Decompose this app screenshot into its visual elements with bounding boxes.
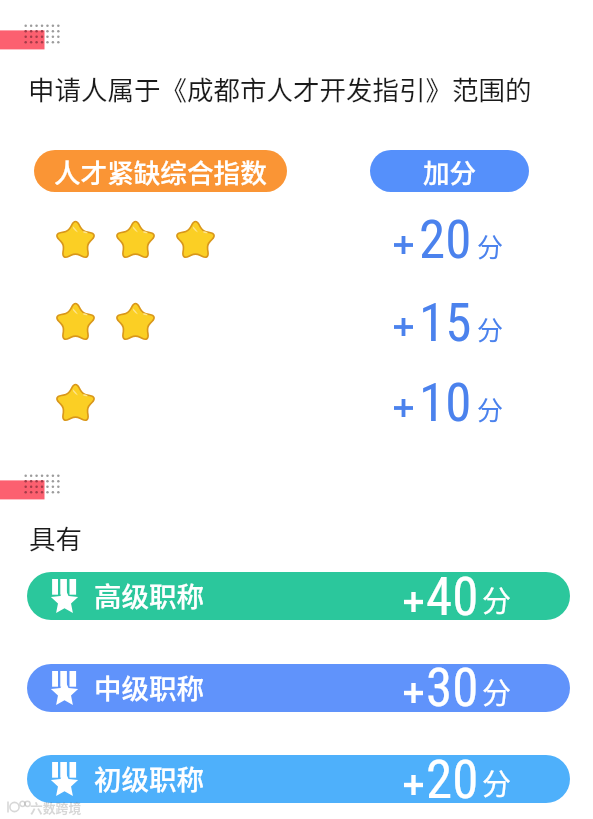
staticText: 申请人属于《成都市人才开发指引》范围的: [28, 69, 532, 107]
staticText: 人才紧缺综合指数: [54, 152, 267, 191]
staticText: 分: [477, 310, 504, 348]
button[interactable]: 人才紧缺综合指数: [34, 150, 287, 192]
other: Medal: [51, 671, 81, 706]
staticText: 分: [477, 227, 504, 265]
button[interactable]: [27, 572, 570, 620]
staticText: 分: [482, 578, 512, 620]
staticText: 分: [482, 761, 512, 803]
other: Medal: [51, 762, 81, 797]
staticText: 具有: [29, 518, 82, 556]
staticText: 初级职称: [94, 758, 204, 798]
other: Medal: [51, 579, 81, 614]
staticText: 15: [419, 292, 472, 354]
staticText: 加分: [423, 152, 477, 191]
staticText: 分: [482, 670, 512, 712]
staticText: 分: [477, 390, 504, 428]
staticText: 高级职称: [94, 575, 204, 615]
staticText: 10: [419, 372, 472, 434]
staticText: 20: [426, 749, 479, 811]
staticText: 20: [419, 209, 472, 271]
button[interactable]: 加分: [370, 150, 529, 192]
staticText: 40: [426, 566, 479, 628]
button[interactable]: [27, 755, 570, 803]
button[interactable]: [27, 664, 570, 712]
staticText: 中级职称: [94, 667, 204, 707]
staticText: 30: [426, 657, 479, 719]
staticText: 六数跨境: [30, 798, 82, 817]
